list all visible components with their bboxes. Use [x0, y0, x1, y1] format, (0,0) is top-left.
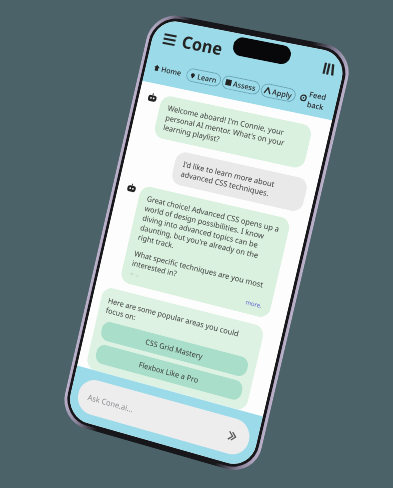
staticText: Assess: [232, 79, 257, 93]
staticText: Flexbox Like a Pro: [138, 359, 199, 385]
button[interactable]: Feedback: [294, 84, 334, 115]
staticText: CSS Grid Mastery: [144, 336, 204, 361]
staticText: Welcome aboard! I'm Connie, your persona…: [162, 103, 303, 161]
button[interactable]: Assess: [220, 74, 262, 96]
staticText: Home: [160, 64, 183, 78]
staticText: Learn: [196, 71, 218, 85]
staticText: Here are some popular areas you could fo…: [105, 295, 256, 352]
button[interactable]: Learn: [185, 67, 223, 88]
button[interactable]: Flexbox Like a Pro: [94, 343, 244, 402]
staticText: Feedback: [306, 89, 329, 113]
button[interactable]: Library: [320, 60, 337, 77]
staticText: Cone: [180, 30, 225, 60]
button[interactable]: Apply: [259, 82, 297, 103]
staticText: Great choice! Advanced CSS opens up a wo…: [137, 193, 281, 274]
button[interactable]: Send: [223, 427, 240, 445]
staticText: What specific techniques are you most in…: [131, 248, 268, 300]
button[interactable]: Great choice! Advanced CSS opens up a wo…: [119, 185, 291, 319]
button[interactable]: Ask Cone.ai...: [74, 376, 253, 459]
button[interactable]: CSS Grid Mastery: [99, 320, 250, 378]
staticText: ☆ ☆: [129, 270, 141, 279]
staticText: I'd like to learn more about advanced CS…: [180, 159, 299, 204]
button[interactable]: Welcome aboard! I'm Connie, your persona…: [153, 94, 313, 170]
staticText: Apply: [271, 87, 293, 100]
staticText: Ask Cone.ai...: [87, 391, 135, 414]
button[interactable]: I'd like to learn more about advanced CS…: [170, 150, 309, 213]
button[interactable]: more.: [245, 298, 263, 310]
button[interactable]: Home: [149, 60, 187, 80]
button[interactable]: Menu: [159, 29, 180, 49]
